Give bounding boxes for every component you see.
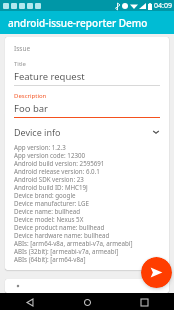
staticText: Android SDK version: 23 <box>14 175 84 183</box>
staticText: Device hardware name: bullhead <box>14 231 110 239</box>
staticText: Description <box>14 92 47 100</box>
staticText: 04:09 <box>154 1 172 11</box>
staticText: Device product name: bullhead <box>14 223 105 231</box>
button[interactable]: Foo bar <box>14 102 160 115</box>
staticText: App version: 1.2.3 <box>14 143 66 151</box>
button[interactable]: Send report <box>141 257 172 288</box>
staticText: Device info <box>14 126 152 138</box>
staticText: ABIs (32bit): [armeabi-v7a, armeabi] <box>14 247 119 255</box>
button[interactable]: Recents <box>136 294 152 310</box>
staticText: Device model: Nexus 5X <box>14 215 84 223</box>
staticText: ABIs: [arm64-v8a, armeabi-v7a, armeabi] <box>14 239 133 247</box>
button[interactable]: Home <box>79 294 95 310</box>
staticText: ABIs (64bit): [arm64-v8a] <box>14 255 86 263</box>
other: Collapse device info <box>152 128 160 136</box>
staticText: Foo bar <box>14 102 48 115</box>
staticText: android-issue-reporter Demo <box>8 16 148 30</box>
button[interactable]: Device info <box>14 126 160 138</box>
staticText: Issue <box>14 44 31 53</box>
staticText: Feature request <box>14 70 85 83</box>
staticText: Title <box>14 60 26 68</box>
staticText: Device manufacturer: LGE <box>14 199 90 207</box>
staticText: Android build version: 2595691 <box>14 159 105 167</box>
button[interactable]: Back <box>22 294 38 310</box>
staticText: Device brand: google <box>14 191 76 199</box>
staticText: Android build ID: MHC19J <box>14 183 88 191</box>
staticText: Device name: bullhead <box>14 207 80 215</box>
staticText: App version code: 12300 <box>14 151 86 159</box>
button[interactable]: Feature request <box>14 70 160 83</box>
staticText: Android release version: 6.0.1 <box>14 167 100 175</box>
